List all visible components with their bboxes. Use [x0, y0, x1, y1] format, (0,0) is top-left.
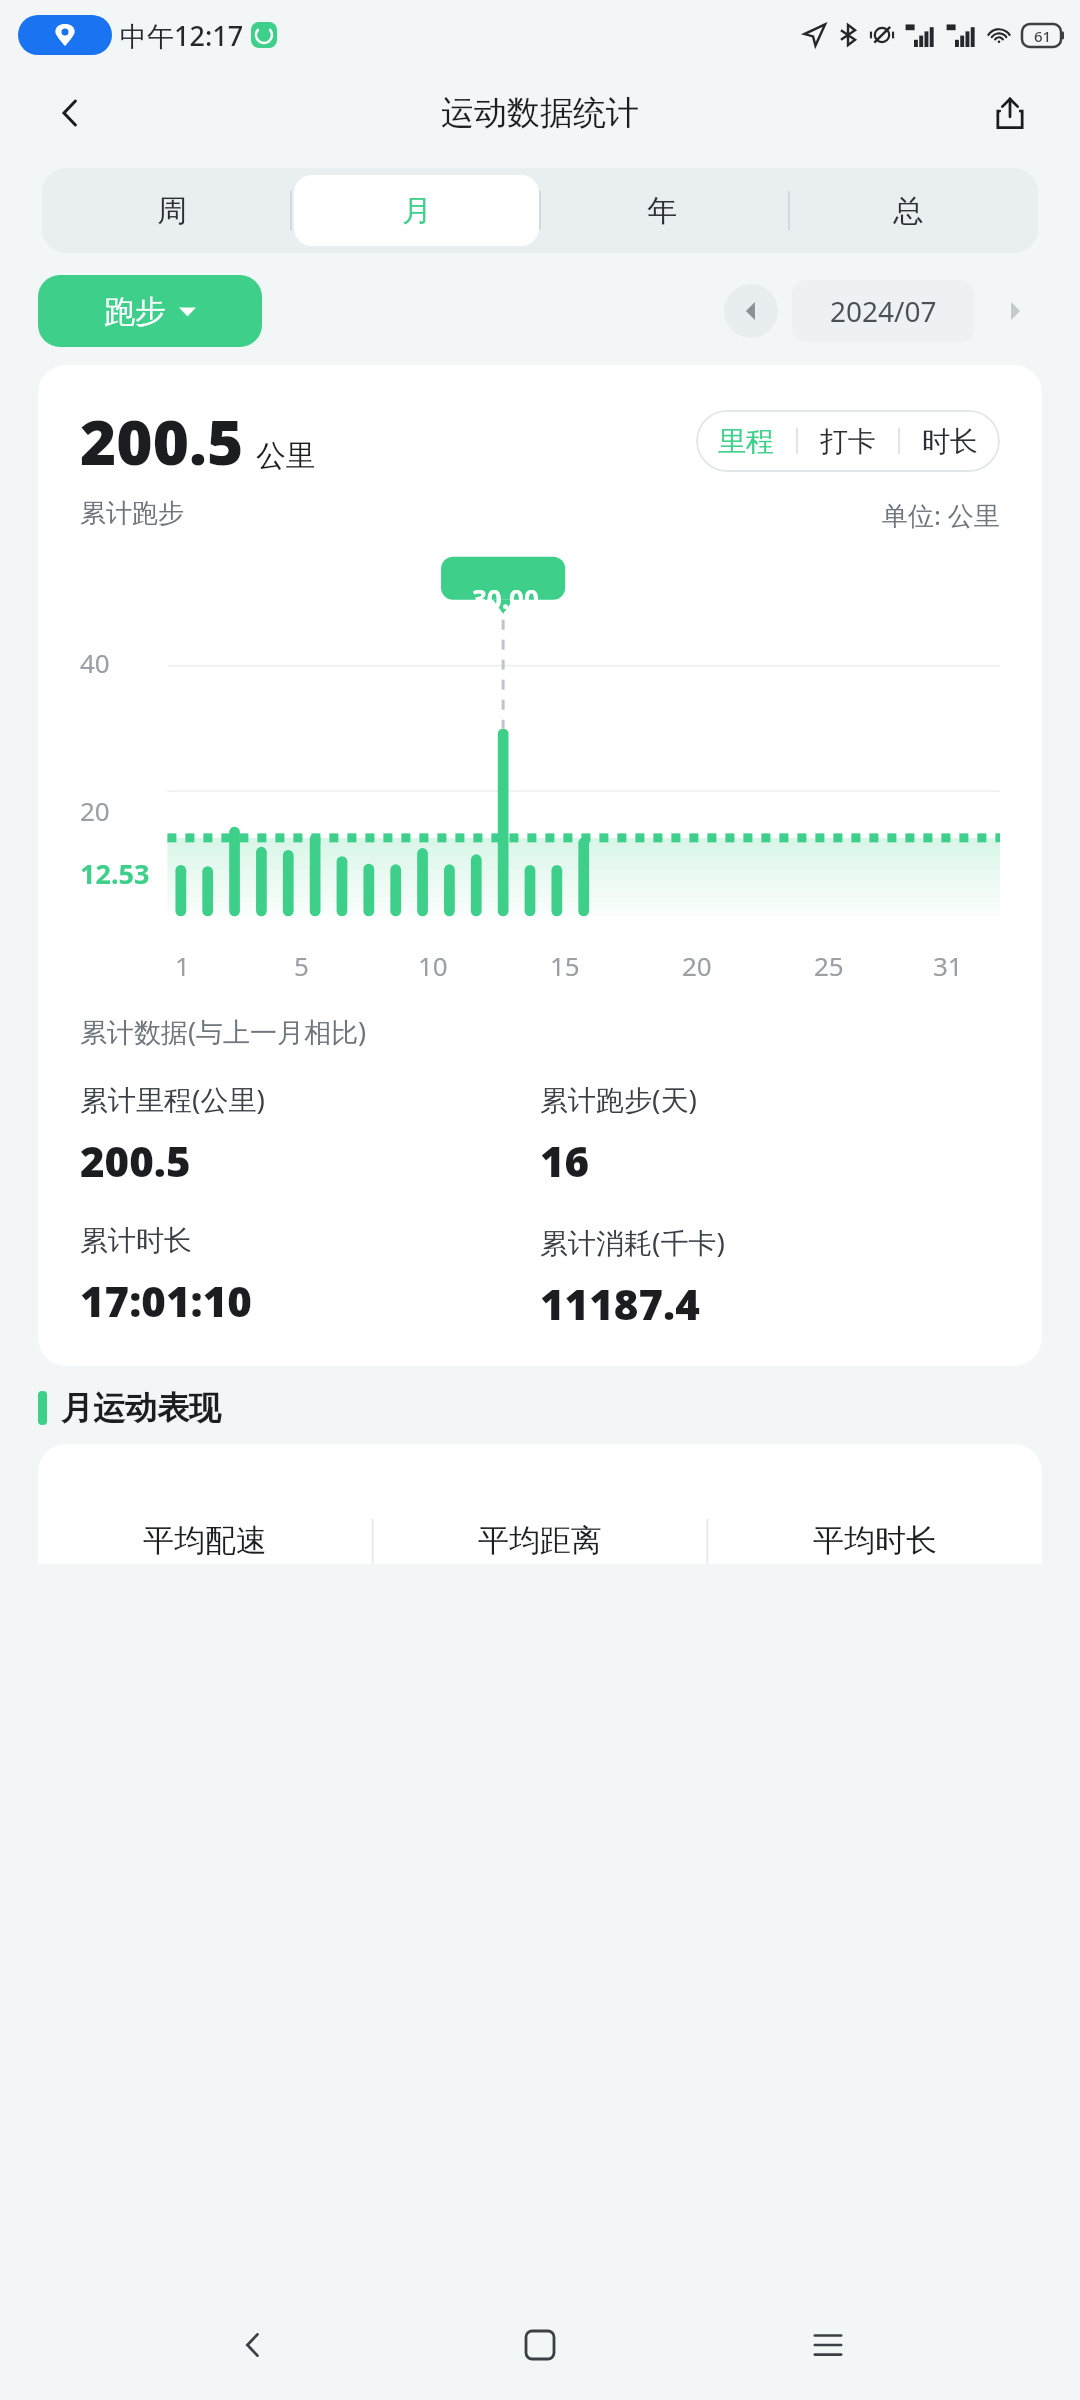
button[interactable]: Home: [505, 2310, 575, 2380]
staticText: 15: [550, 948, 580, 983]
staticText: 累计跑步: [80, 497, 184, 530]
staticText: 200.5: [80, 399, 244, 483]
staticText: 累计里程(公里): [80, 1080, 265, 1118]
staticText: 61: [1034, 26, 1052, 46]
button[interactable]: Share: [982, 85, 1038, 141]
staticText: 总: [893, 192, 923, 230]
staticText: 累计消耗(千卡): [540, 1223, 725, 1261]
staticText: 运动数据统计: [441, 92, 639, 134]
staticText: 中午12:17: [120, 17, 244, 54]
button[interactable]: 2024/07: [792, 280, 974, 342]
staticText: 5: [294, 948, 309, 983]
button[interactable]: Back: [42, 85, 98, 141]
button[interactable]: 时长: [922, 410, 978, 472]
staticText: 累计数据(与上一月相比): [80, 1013, 367, 1050]
staticText: 25: [814, 948, 844, 983]
button[interactable]: Next month: [988, 284, 1042, 338]
staticText: 12.53: [80, 855, 150, 892]
staticText: 10: [418, 948, 448, 983]
staticText: 20: [682, 948, 712, 983]
button[interactable]: 月: [294, 175, 539, 246]
staticText: 2024/07: [830, 292, 937, 330]
staticText: 月运动表现: [61, 1388, 221, 1428]
staticText: 单位: 公里: [882, 497, 1000, 533]
staticText: 20: [80, 793, 110, 828]
staticText: 16: [540, 1132, 590, 1189]
button[interactable]: 打卡: [820, 410, 876, 472]
staticText: 40: [80, 645, 110, 680]
staticText: 跑步: [104, 292, 166, 331]
staticText: 平均距离: [478, 1521, 602, 1560]
button[interactable]: Recent apps: [793, 2310, 863, 2380]
staticText: 年: [647, 192, 677, 230]
staticText: 里程: [718, 424, 774, 459]
staticText: 11187.4: [540, 1275, 700, 1332]
staticText: 周: [157, 192, 187, 230]
button[interactable]: 跑步: [38, 275, 262, 347]
button[interactable]: 总: [785, 175, 1031, 246]
staticText: 31: [933, 948, 963, 983]
button[interactable]: 年: [539, 175, 785, 246]
staticText: 平均配速: [143, 1521, 267, 1560]
staticText: 月: [402, 192, 432, 230]
staticText: 累计跑步(天): [540, 1080, 697, 1118]
staticText: 17:01:10: [80, 1272, 252, 1329]
staticText: 200.5: [80, 1132, 191, 1189]
staticText: 平均时长: [813, 1521, 937, 1560]
staticText: 打卡: [820, 424, 876, 459]
staticText: 1: [175, 948, 190, 983]
staticText: 30.00: [472, 581, 539, 616]
button[interactable]: Previous month: [724, 284, 778, 338]
button[interactable]: 周: [49, 175, 294, 246]
button[interactable]: 里程: [718, 410, 774, 472]
staticText: 时长: [922, 424, 978, 459]
button[interactable]: Back: [218, 2310, 288, 2380]
staticText: 累计时长: [80, 1223, 192, 1258]
staticText: 公里: [256, 437, 316, 475]
